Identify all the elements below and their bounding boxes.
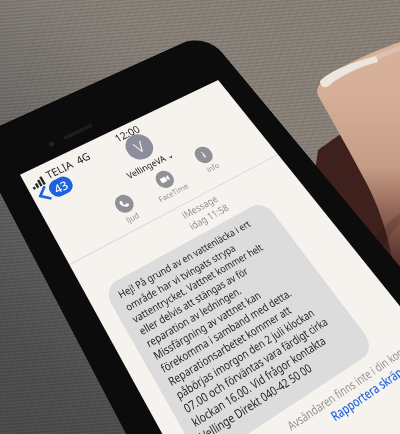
staticText: V	[129, 136, 149, 158]
staticText: Rapportera skräp	[327, 363, 400, 424]
staticText: Hej! På grund av en vattenläcka i ert om…	[115, 215, 349, 434]
staticText: ljud	[124, 209, 142, 225]
staticText: idag 11:58	[186, 201, 231, 232]
button[interactable]: Back	[34, 172, 77, 206]
staticText: iMessage	[179, 192, 220, 221]
button[interactable]: Hej! På grund av en vattenläcka i ert om…	[102, 200, 376, 434]
staticText: 12:00	[111, 122, 143, 145]
button[interactable]: info	[180, 138, 234, 181]
staticText: 43	[51, 177, 71, 197]
button[interactable]: Rapportera skräp	[327, 363, 400, 424]
staticText: Avsändaren finns inte i din kontaktlista…	[284, 325, 400, 434]
button[interactable]: Contact avatar	[120, 130, 159, 164]
staticText: info	[204, 160, 221, 174]
staticText: VellingeVA ⌄	[124, 148, 177, 181]
button[interactable]: FaceTime	[140, 162, 196, 207]
staticText: TELIA 4G	[43, 149, 93, 182]
button[interactable]: ljud	[99, 185, 156, 232]
staticText: FaceTime	[156, 180, 191, 204]
